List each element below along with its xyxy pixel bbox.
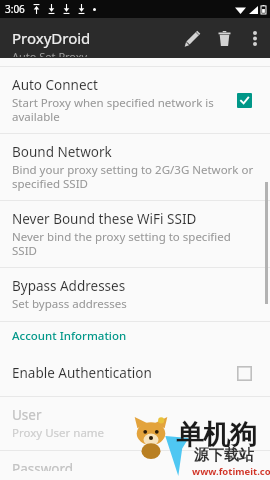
button[interactable]: User (0, 397, 270, 450)
staticText: Auto Connect (12, 76, 98, 94)
staticText: Set bypass addresses (12, 296, 127, 312)
staticText: Account Information (12, 328, 127, 344)
button[interactable]: Bound Network (0, 134, 270, 200)
button[interactable]: Never Bound these WiFi SSID (0, 201, 270, 267)
staticText: Proxy User name (12, 425, 105, 441)
staticText: Bypass Addresses (12, 277, 126, 295)
staticText: User (12, 406, 42, 424)
staticText: ProxyDroid (12, 28, 91, 48)
staticText: Start Proxy when specified network is av… (12, 95, 214, 124)
staticText: Enable Authentication (12, 364, 152, 382)
button[interactable]: Bypass Addresses (0, 268, 270, 321)
button[interactable]: Auto Connect (230, 86, 258, 114)
button[interactable]: Password (0, 451, 270, 480)
staticText: Password (12, 460, 74, 471)
staticText: Bound Network (12, 143, 112, 161)
button[interactable]: Auto Connect (0, 67, 270, 133)
staticText: 源下载站 (194, 446, 254, 465)
button[interactable]: Enable Authentication (0, 350, 270, 396)
staticText: Auto Set Proxy (12, 49, 88, 57)
button[interactable]: Delete (208, 22, 240, 54)
staticText: 单机狗 (176, 418, 257, 452)
staticText: Bind your proxy setting to 2G/3G Network… (12, 162, 254, 191)
button[interactable]: Enable Authentication (230, 359, 258, 387)
staticText: Never bind the proxy setting to specifie… (12, 229, 258, 258)
button[interactable]: Edit (176, 22, 208, 54)
staticText: 3:06 (5, 2, 25, 16)
staticText: www.fotimeit.com (192, 465, 270, 478)
staticText: Never Bound these WiFi SSID (12, 210, 197, 228)
button[interactable]: More options (240, 23, 270, 53)
